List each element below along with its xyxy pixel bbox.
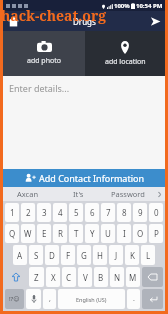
button[interactable]: Y: [85, 224, 99, 243]
staticText: add location: [105, 57, 146, 67]
staticText: G: [81, 250, 87, 261]
button[interactable]: U: [101, 224, 115, 243]
staticText: J: [115, 250, 118, 261]
button[interactable]: More suggestions: [153, 187, 165, 201]
staticText: ,: [49, 294, 51, 304]
staticText: add photo: [27, 56, 61, 66]
staticText: P: [154, 228, 159, 239]
staticText: U: [105, 228, 111, 239]
staticText: A: [17, 250, 23, 261]
staticText: Q: [9, 228, 16, 239]
staticText: N: [114, 272, 121, 283]
button[interactable]: R: [53, 224, 67, 243]
staticText: F: [66, 250, 71, 261]
button[interactable]: G: [77, 245, 91, 265]
staticText: K: [130, 250, 135, 261]
button[interactable]: English (US): [58, 289, 125, 309]
button[interactable]: .: [127, 289, 140, 309]
button[interactable]: B: [94, 267, 108, 287]
staticText: 8: [122, 207, 127, 218]
staticText: X: [51, 272, 56, 283]
staticText: 7: [106, 207, 111, 218]
button[interactable]: H: [93, 245, 107, 265]
button[interactable]: 7: [101, 203, 115, 222]
button[interactable]: N: [110, 267, 124, 287]
button[interactable]: J: [109, 245, 123, 265]
button[interactable]: F: [61, 245, 75, 265]
button[interactable]: I: [117, 224, 131, 243]
staticText: W: [24, 228, 32, 239]
staticText: Password: [111, 189, 145, 199]
staticText: 5: [74, 207, 79, 218]
button[interactable]: S: [29, 245, 43, 265]
button[interactable]: 9: [133, 203, 147, 222]
button[interactable]: W: [21, 224, 35, 243]
button[interactable]: Backspace: [142, 267, 163, 287]
button[interactable]: Q: [5, 224, 19, 243]
staticText: B: [98, 272, 104, 283]
staticText: Add Contact Information: [39, 172, 144, 184]
button[interactable]: 2: [21, 203, 35, 222]
button[interactable]: P: [149, 224, 163, 243]
staticText: English (US): [76, 296, 107, 303]
button[interactable]: 6: [85, 203, 99, 222]
button[interactable]: Home: [3, 11, 23, 31]
button[interactable]: Password: [103, 187, 153, 201]
button[interactable]: X: [46, 267, 60, 287]
staticText: V: [83, 272, 88, 283]
staticText: 2: [26, 207, 31, 218]
button[interactable]: T: [69, 224, 83, 243]
staticText: L: [146, 250, 151, 261]
staticText: 0: [154, 207, 159, 218]
button[interactable]: add location: [85, 31, 165, 76]
button[interactable]: add photo: [3, 31, 85, 76]
button[interactable]: 0: [149, 203, 163, 222]
staticText: 1: [10, 207, 15, 218]
staticText: 4: [58, 207, 63, 218]
staticText: H: [97, 250, 103, 261]
button[interactable]: Shift: [5, 267, 27, 287]
button[interactable]: ,: [43, 289, 56, 309]
staticText: 9: [138, 207, 143, 218]
button[interactable]: L: [141, 245, 155, 265]
staticText: 10:54 PM: [136, 2, 163, 10]
staticText: M: [129, 272, 137, 283]
button[interactable]: K: [125, 245, 139, 265]
staticText: Z: [34, 272, 39, 283]
button[interactable]: V: [78, 267, 92, 287]
button[interactable]: Axcan: [3, 187, 53, 201]
staticText: Drugs: [73, 16, 96, 27]
button[interactable]: Return: [142, 289, 163, 309]
button[interactable]: 3: [37, 203, 51, 222]
staticText: Enter details...: [9, 82, 70, 94]
button[interactable]: It's: [53, 187, 103, 201]
button[interactable]: O: [133, 224, 147, 243]
staticText: 3: [42, 207, 47, 218]
staticText: .: [133, 294, 135, 304]
button[interactable]: 8: [117, 203, 131, 222]
staticText: 6: [90, 207, 95, 218]
button[interactable]: Send: [145, 11, 165, 31]
staticText: It's: [73, 189, 84, 199]
button[interactable]: Voice input: [26, 289, 41, 309]
staticText: hack-cheat.org: [1, 6, 107, 25]
staticText: C: [66, 272, 72, 283]
button[interactable]: !?☺: [5, 289, 24, 309]
button[interactable]: E: [37, 224, 51, 243]
staticText: O: [137, 228, 144, 239]
button[interactable]: D: [45, 245, 59, 265]
staticText: I: [123, 228, 126, 239]
button[interactable]: M: [126, 267, 140, 287]
staticText: T: [74, 228, 79, 239]
button[interactable]: 4: [53, 203, 67, 222]
button[interactable]: A: [13, 245, 27, 265]
button[interactable]: Add Contact Information: [3, 169, 165, 187]
button[interactable]: C: [62, 267, 76, 287]
staticText: Axcan: [17, 189, 39, 199]
button[interactable]: 1: [5, 203, 19, 222]
button[interactable]: 5: [69, 203, 83, 222]
staticText: !?☺: [9, 295, 20, 303]
staticText: D: [49, 250, 55, 261]
button[interactable]: Z: [29, 267, 44, 287]
staticText: S: [34, 250, 39, 261]
